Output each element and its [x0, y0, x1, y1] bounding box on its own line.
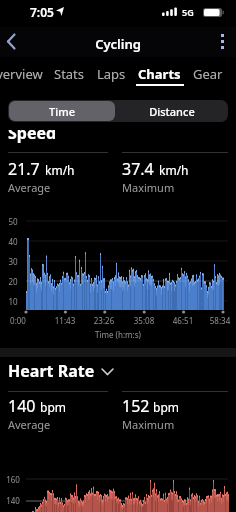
staticText: 5G: [182, 6, 194, 18]
staticText: Distance: [132, 104, 212, 512]
staticText: 40: [1, 236, 25, 512]
staticText: 160: [0, 474, 26, 512]
button[interactable]: [100, 366, 116, 378]
staticText: bpm: [40, 399, 66, 415]
staticText: 23:26: [84, 315, 124, 512]
staticText: 7:05: [30, 4, 54, 20]
staticText: 35:08: [124, 315, 164, 512]
button[interactable]: Gear: [0, 60, 30, 78]
staticText: km/h: [45, 162, 75, 178]
staticText: Speed: [8, 130, 57, 144]
button[interactable]: Charts: [0, 60, 43, 78]
button[interactable]: Stats: [0, 60, 31, 78]
staticText: 140: [8, 395, 36, 417]
staticText: 20: [1, 276, 25, 512]
staticText: 11:43: [45, 315, 85, 512]
button[interactable]: [212, 30, 232, 54]
staticText: 10: [1, 296, 25, 512]
button[interactable]: Overview: [0, 60, 57, 78]
staticText: Time (h:m:s): [68, 329, 168, 512]
button[interactable]: [2, 30, 24, 54]
staticText: km/h: [159, 162, 189, 178]
staticText: 0:00: [0, 315, 38, 512]
staticText: Average: [8, 180, 51, 195]
staticText: Average: [8, 417, 51, 432]
staticText: Time: [22, 104, 102, 512]
staticText: 21.7: [8, 158, 40, 180]
staticText: 152: [122, 395, 150, 417]
button[interactable]: [9, 101, 115, 121]
staticText: 58:34: [200, 315, 236, 512]
staticText: 37.4: [122, 158, 154, 180]
staticText: bpm: [153, 399, 179, 415]
staticText: 50: [1, 216, 25, 512]
staticText: Cycling: [78, 35, 158, 512]
button[interactable]: Laps: [0, 60, 29, 78]
staticText: Maximum: [122, 180, 175, 195]
staticText: Heart Rate: [8, 360, 95, 382]
staticText: Maximum: [122, 417, 175, 432]
staticText: 46:51: [163, 315, 203, 512]
button[interactable]: [115, 100, 228, 122]
staticText: 30: [1, 256, 25, 512]
staticText: 140: [0, 495, 26, 512]
